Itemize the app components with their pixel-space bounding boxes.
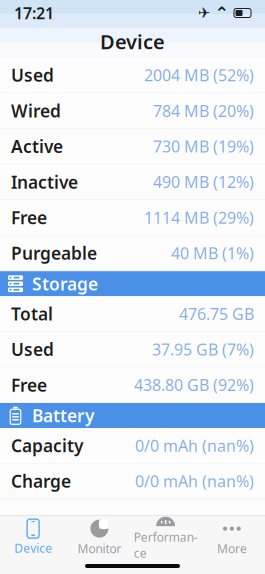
staticText: Storage bbox=[32, 272, 98, 295]
staticText: Battery bbox=[32, 404, 94, 427]
button[interactable]: Used bbox=[0, 332, 265, 367]
staticText: 730 MB (19%) bbox=[153, 136, 254, 157]
button[interactable]: Monitor bbox=[66, 516, 132, 560]
button[interactable]: Capacity bbox=[0, 428, 265, 464]
staticText: 476.75 GB bbox=[179, 303, 254, 324]
staticText: ⌃ bbox=[214, 3, 229, 23]
button[interactable]: Total bbox=[0, 296, 265, 332]
button[interactable]: Active bbox=[0, 129, 265, 164]
staticText: Device bbox=[100, 28, 165, 55]
staticText: Performance bbox=[134, 529, 198, 561]
button[interactable]: Charge bbox=[0, 464, 265, 499]
staticText: More bbox=[217, 541, 247, 556]
staticText: 17:21 bbox=[14, 2, 54, 24]
button[interactable]: Purgeable bbox=[0, 236, 265, 271]
staticText: ✈ bbox=[198, 5, 210, 21]
button[interactable]: Performance bbox=[132, 516, 199, 560]
staticText: Total bbox=[11, 302, 53, 325]
staticText: Charge bbox=[11, 470, 71, 493]
staticText: Free bbox=[11, 373, 47, 396]
staticText: Active bbox=[11, 135, 63, 158]
button[interactable]: Device bbox=[0, 516, 66, 560]
staticText: 490 MB (12%) bbox=[153, 171, 254, 192]
staticText: 1114 MB (29%) bbox=[144, 207, 254, 228]
staticText: Free bbox=[11, 206, 47, 229]
staticText: 37.95 GB (7%) bbox=[152, 339, 254, 360]
staticText: Monitor bbox=[77, 541, 121, 556]
staticText: 438.80 GB (92%) bbox=[134, 374, 254, 395]
staticText: Purgeable bbox=[11, 242, 97, 265]
staticText: Inactive bbox=[11, 170, 78, 193]
staticText: Capacity bbox=[11, 434, 83, 457]
staticText: 40 MB (1%) bbox=[171, 242, 254, 264]
staticText: 0/0 mAh (nan%) bbox=[135, 470, 254, 492]
staticText: 0/0 mAh (nan%) bbox=[135, 435, 254, 456]
button[interactable]: Used bbox=[0, 58, 265, 93]
button[interactable]: Wired bbox=[0, 93, 265, 129]
staticText: 784 MB (20%) bbox=[153, 100, 254, 121]
button[interactable]: Free bbox=[0, 367, 265, 403]
button[interactable]: More bbox=[199, 516, 265, 560]
staticText: Wired bbox=[11, 99, 61, 122]
staticText: Used bbox=[11, 338, 54, 361]
staticText: Used bbox=[11, 64, 54, 87]
button[interactable]: Inactive bbox=[0, 164, 265, 200]
staticText: Device bbox=[14, 540, 52, 556]
staticText: 2004 MB (52%) bbox=[144, 64, 254, 86]
button[interactable]: Free bbox=[0, 200, 265, 236]
